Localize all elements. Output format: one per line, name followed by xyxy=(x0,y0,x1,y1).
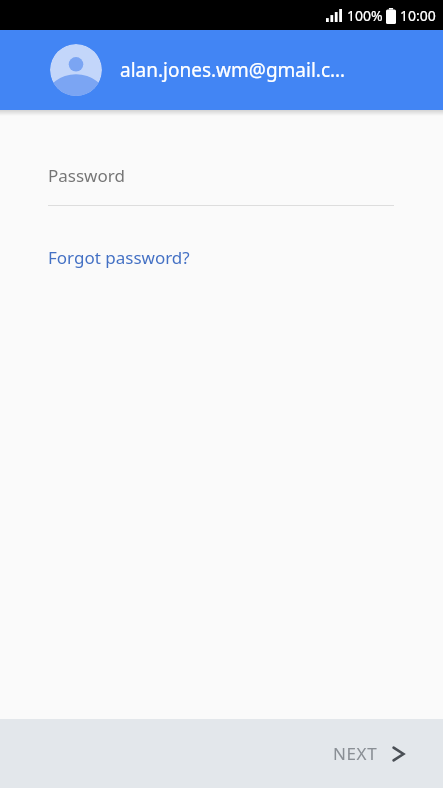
staticText: Password xyxy=(48,164,125,187)
button[interactable]: Forgot password? xyxy=(0,244,206,271)
button[interactable]: Password xyxy=(0,164,443,206)
button[interactable]: NEXT xyxy=(309,730,443,777)
staticText: alan.jones.wm@gmail.c… xyxy=(120,57,346,83)
staticText: 100% xyxy=(347,6,383,25)
staticText: NEXT xyxy=(333,742,378,765)
staticText: Forgot password? xyxy=(48,246,190,269)
button[interactable]: alan.jones.wm@gmail.c… xyxy=(0,30,443,110)
staticText: 10:00 xyxy=(400,6,436,25)
